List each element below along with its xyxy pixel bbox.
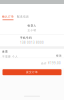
staticText: 合计 ¥199.00 bbox=[41, 61, 61, 65]
button[interactable]: 修改 bbox=[56, 50, 62, 57]
staticText: 不需要 个人 bbox=[2, 55, 18, 58]
button[interactable]: 确认订单 bbox=[2, 15, 14, 20]
staticText: 配送信息 bbox=[17, 15, 29, 18]
button[interactable]: 配送信息 bbox=[17, 15, 29, 20]
staticText: 王小明 bbox=[27, 29, 36, 32]
staticText: 手机号码 bbox=[20, 36, 32, 39]
staticText: 确认订单 bbox=[2, 15, 14, 18]
button[interactable]: 提交订单 bbox=[2, 69, 61, 75]
staticText: 修改 bbox=[56, 54, 62, 57]
staticText: 发票 bbox=[2, 50, 8, 53]
staticText: 收货人 bbox=[27, 24, 36, 27]
staticText: 提交订单 bbox=[26, 71, 38, 74]
staticText: 138 0013 8000 bbox=[20, 41, 44, 44]
